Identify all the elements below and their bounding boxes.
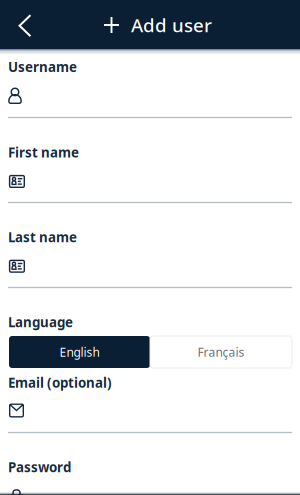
staticText: First name: [8, 143, 79, 161]
staticText: Email (optional): [8, 374, 112, 391]
staticText: Language: [8, 313, 73, 331]
button[interactable]: Français: [150, 336, 292, 368]
staticText: Username: [8, 58, 77, 76]
staticText: Last name: [8, 228, 77, 246]
staticText: English: [59, 344, 99, 360]
button[interactable]: Back: [0, 0, 43, 49]
staticText: Add user: [131, 13, 212, 37]
staticText: Français: [197, 344, 244, 360]
button[interactable]: English: [9, 336, 150, 368]
staticText: Password: [8, 458, 71, 476]
